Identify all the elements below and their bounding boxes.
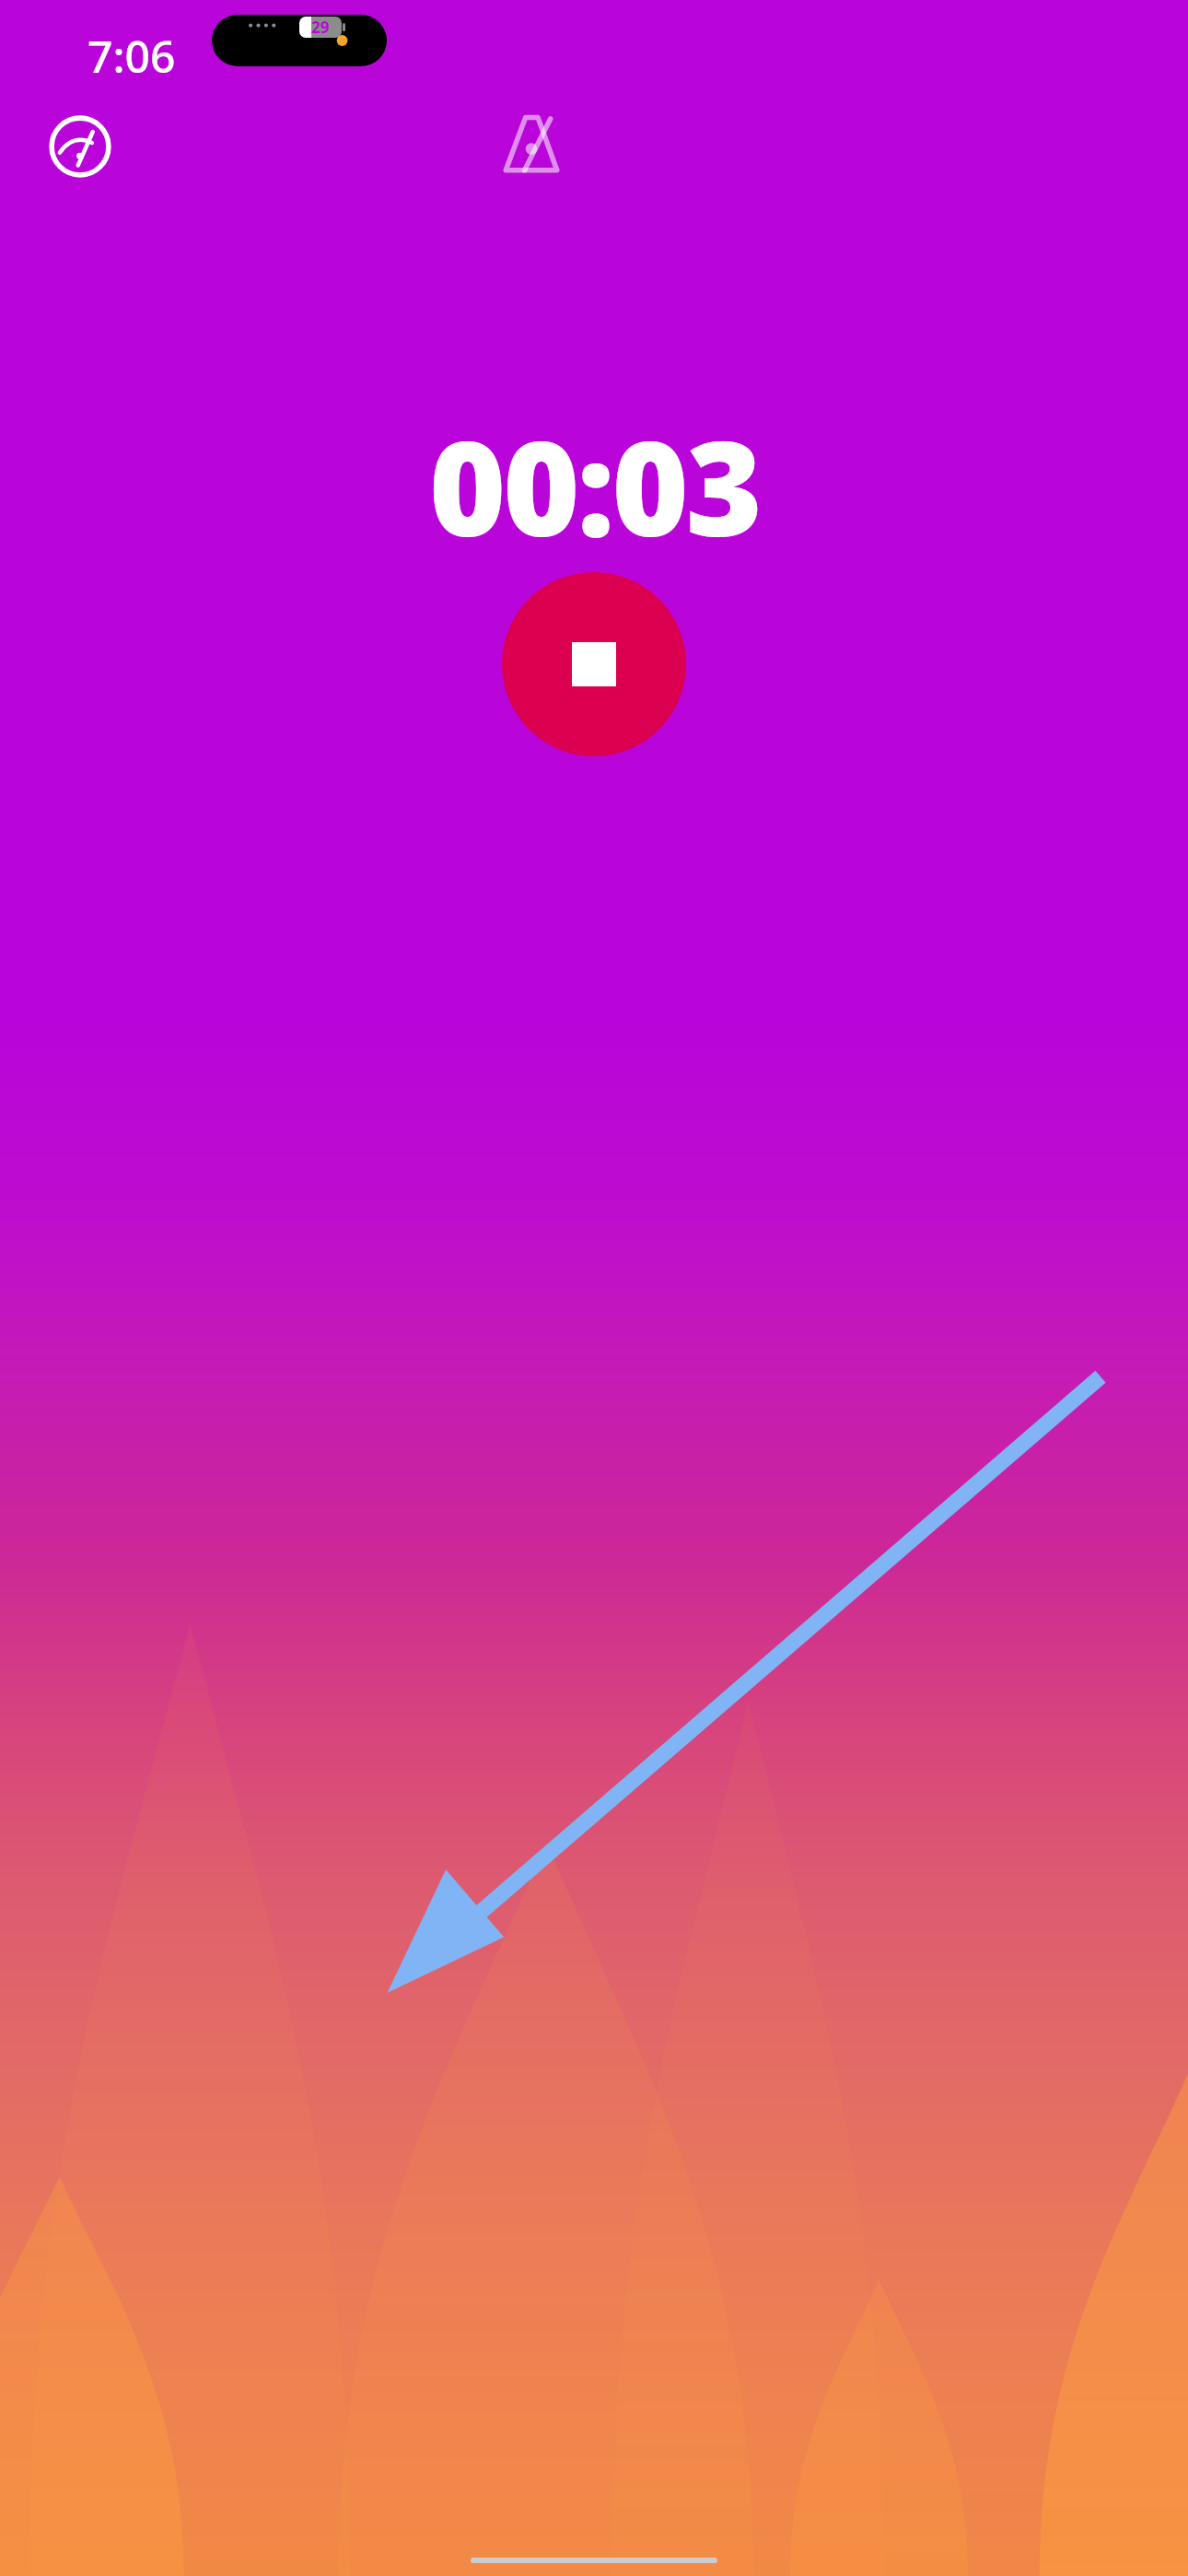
button[interactable]: Tempo xyxy=(46,112,114,181)
button[interactable]: Stop xyxy=(502,572,686,756)
staticText: 7:06 xyxy=(87,26,176,86)
staticText: 29 xyxy=(311,17,330,38)
staticText: 00:03 xyxy=(429,396,760,574)
button[interactable]: Metronome xyxy=(497,111,565,179)
